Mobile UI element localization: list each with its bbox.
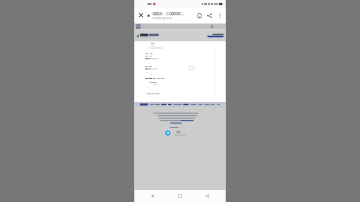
button[interactable]: Recents xyxy=(144,190,162,202)
button[interactable]: Home xyxy=(171,190,189,202)
staticText: codeforces.com xyxy=(152,17,171,20)
button[interactable]: Download page xyxy=(194,8,204,23)
staticText: Status - Codeforc... xyxy=(152,12,184,16)
button[interactable]: Close xyxy=(134,8,147,23)
button[interactable]: Share xyxy=(204,8,214,23)
button[interactable]: Back xyxy=(198,190,216,202)
button[interactable]: More options xyxy=(214,8,225,23)
